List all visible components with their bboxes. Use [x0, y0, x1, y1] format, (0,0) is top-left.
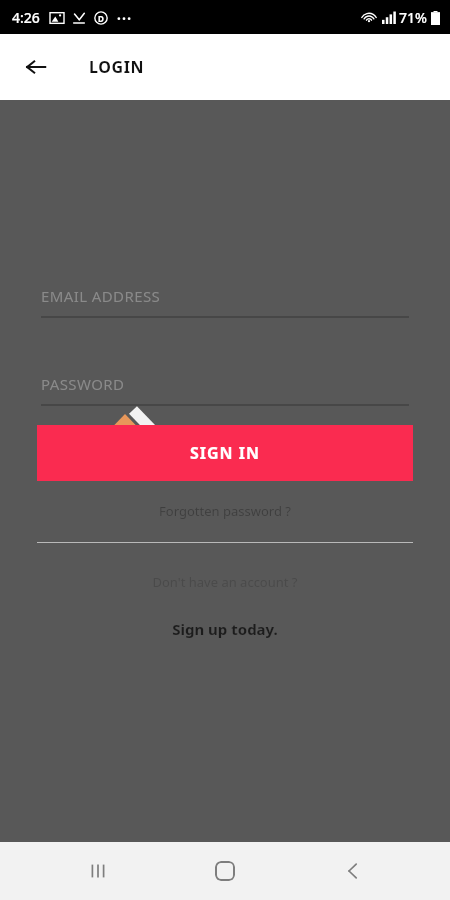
staticText: SIGN IN	[190, 442, 261, 464]
staticText: 4:26	[12, 8, 40, 27]
button[interactable]: Back	[323, 842, 383, 900]
staticText: 71%	[399, 8, 427, 27]
button[interactable]: Sign up today.	[0, 615, 450, 643]
staticText: EMAIL ADDRESS	[41, 286, 161, 306]
staticText: D	[98, 13, 104, 24]
staticText: PASSWORD	[41, 374, 125, 394]
button[interactable]: Forgotten password ?	[0, 496, 450, 526]
button[interactable]: EMAIL ADDRESS	[41, 286, 409, 318]
staticText: Forgotten password ?	[159, 502, 291, 520]
button[interactable]: PASSWORD	[41, 374, 409, 406]
button[interactable]: Back	[14, 45, 58, 89]
staticText: Sign up today.	[172, 619, 278, 639]
button[interactable]: SIGN IN	[37, 425, 413, 481]
button[interactable]: Recent apps	[68, 842, 128, 900]
button[interactable]: Home	[195, 842, 255, 900]
staticText: LOGIN	[89, 56, 145, 78]
